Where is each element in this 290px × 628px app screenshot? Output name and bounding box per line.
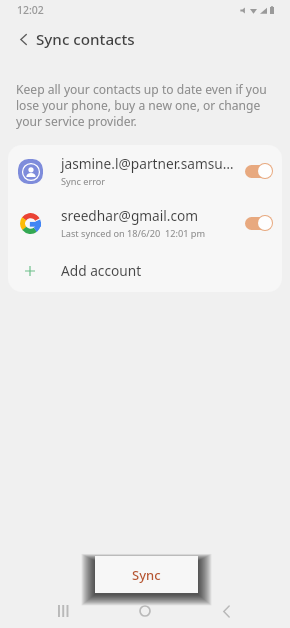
staticText: your service provider. [16,113,137,129]
button[interactable]: Add account [8,249,282,292]
button[interactable]: Sync [95,556,198,593]
button[interactable]: Home [133,599,157,623]
button[interactable]: Sync toggle [245,215,273,231]
staticText: sreedhar@gmail.com [61,206,199,225]
staticText: lose your phone, buy a new one, or chang… [16,97,261,113]
button[interactable]: Sync toggle [245,163,273,179]
staticText: 12:02 [17,3,44,17]
staticText: jasmine.l@partner.samsu… [61,154,234,173]
button[interactable]: Recent apps [52,599,76,623]
staticText: Last synced on 18/6/20 12:01 pm [61,227,206,240]
button[interactable]: jasmine.l@partner.samsu… [8,145,282,197]
staticText: Sync [132,566,161,584]
staticText: Sync contacts [36,29,135,50]
button[interactable]: Back [10,26,36,52]
staticText: Keep all your contacts up to date even i… [16,81,267,97]
button[interactable]: sreedhar@gmail.com [8,197,282,249]
staticText: Add account [61,261,142,280]
staticText: Sync error [61,175,106,188]
button[interactable]: Back [214,599,238,623]
